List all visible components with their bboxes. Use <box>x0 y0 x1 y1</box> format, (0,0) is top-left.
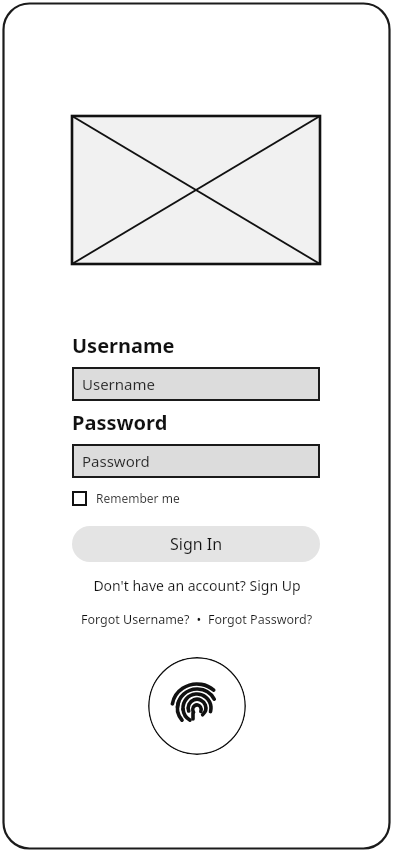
staticText: Don't have an account? Sign Up <box>93 576 301 595</box>
staticText: Password <box>82 451 150 471</box>
staticText: Username <box>82 374 155 394</box>
button[interactable]: Forgot Password? <box>208 611 313 628</box>
button[interactable]: Sign In <box>72 526 320 562</box>
button[interactable]: Password <box>72 444 320 478</box>
staticText: Password <box>72 409 168 436</box>
button[interactable]: Don't have an account? Sign Up <box>0 576 393 595</box>
button[interactable]: Remember me <box>72 490 180 506</box>
button[interactable]: Forgot Username? <box>81 611 190 628</box>
staticText: Username <box>72 332 175 359</box>
staticText: Remember me <box>96 490 180 506</box>
button[interactable]: Sign in with fingerprint <box>148 657 246 755</box>
staticText: Sign In <box>170 533 223 555</box>
button[interactable]: Username <box>72 367 320 401</box>
staticText: • <box>190 611 208 628</box>
